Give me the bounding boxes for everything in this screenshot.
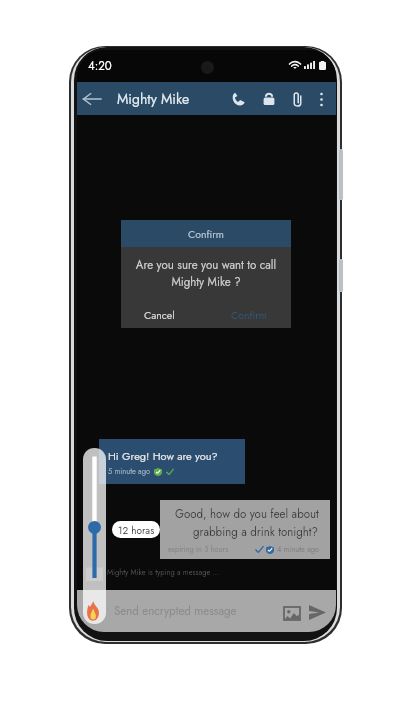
button[interactable]: Encryption bbox=[256, 86, 282, 112]
staticText: grabbing a drink tonight? bbox=[193, 524, 319, 541]
button[interactable]: Cancel bbox=[138, 303, 181, 327]
button[interactable]: Attach image bbox=[281, 602, 303, 624]
button[interactable]: Attach bbox=[284, 86, 310, 112]
button[interactable]: Call bbox=[225, 86, 251, 112]
staticText: Mighty Mike ? bbox=[121, 274, 291, 291]
staticText: Send encrypted message bbox=[114, 603, 237, 620]
staticText: Are you sure you want to call bbox=[121, 257, 291, 274]
staticText: 12 horas bbox=[118, 523, 155, 537]
button[interactable]: Good, how do you feel about bbox=[160, 500, 330, 559]
staticText: Good, how do you feel about bbox=[175, 506, 319, 523]
staticText: 5 minute ago bbox=[108, 466, 151, 477]
staticText: Mighty Mike bbox=[117, 89, 190, 109]
staticText: expiring in 3 hours bbox=[168, 544, 229, 555]
staticText: 4:20 bbox=[88, 58, 112, 75]
staticText: Confirm bbox=[188, 227, 224, 242]
button[interactable]: Hi Greg! How are you? bbox=[99, 439, 245, 484]
button[interactable]: Expiry timer slider bbox=[83, 448, 106, 624]
staticText: Hi Greg! How are you? bbox=[108, 448, 218, 464]
button[interactable]: More options bbox=[310, 88, 332, 110]
staticText: 4 minute ago bbox=[277, 544, 320, 555]
button[interactable]: Send bbox=[305, 600, 329, 624]
staticText: Mighty Mike is typing a message ... bbox=[107, 567, 220, 578]
button[interactable]: Back bbox=[79, 84, 105, 114]
button[interactable]: Confirm bbox=[225, 303, 273, 327]
staticText: Confirm bbox=[231, 308, 267, 323]
staticText: Cancel bbox=[144, 308, 175, 323]
